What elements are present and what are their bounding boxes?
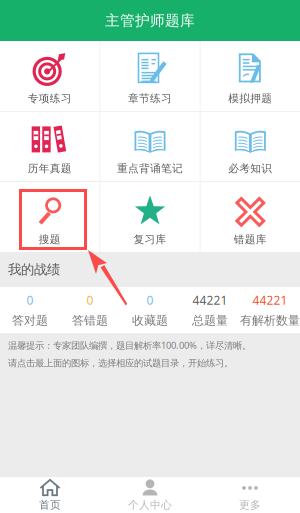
staticText: 个人中心 [128, 498, 172, 511]
staticText: 0 [146, 292, 153, 308]
button[interactable]: 个人中心 [100, 477, 200, 513]
button[interactable]: 必考知识 [201, 112, 300, 181]
staticText: 温馨提示：专家团队编撰，题目解析率100.00%，详尽清晰。 [8, 339, 251, 351]
staticText: 答对题 [12, 313, 48, 328]
staticText: 收藏题 [132, 313, 168, 328]
staticText: 0 [26, 292, 33, 308]
button[interactable]: 专项练习 [0, 41, 99, 111]
staticText: 重点背诵笔记 [117, 162, 183, 175]
button[interactable]: 模拟押题 [201, 41, 300, 111]
button[interactable]: 首页 [0, 477, 100, 513]
staticText: 有解析数量 [240, 313, 300, 328]
staticText: 主管护师题库 [105, 11, 195, 29]
staticText: 模拟押题 [228, 92, 272, 105]
staticText: 必考知识 [228, 162, 272, 175]
staticText: 错题库 [234, 233, 267, 246]
staticText: 44221 [252, 292, 287, 308]
button[interactable]: 更多 [200, 477, 300, 513]
button[interactable]: 历年真题 [0, 112, 99, 181]
staticText: 答错题 [72, 313, 108, 328]
staticText: 请点击最上面的图标，选择相应的试题目录，开始练习。 [8, 357, 233, 369]
staticText: 我的战绩 [8, 261, 60, 278]
staticText: 总题量 [192, 313, 228, 328]
button[interactable]: 错题库 [201, 182, 300, 252]
button[interactable]: 搜题 [0, 182, 99, 252]
staticText: 历年真题 [28, 162, 72, 175]
button[interactable]: 重点背诵笔记 [100, 112, 200, 181]
button[interactable]: 复习库 [100, 182, 200, 252]
staticText: 章节练习 [128, 92, 172, 105]
staticText: 首页 [39, 498, 61, 511]
staticText: 复习库 [133, 233, 166, 246]
button[interactable]: 章节练习 [100, 41, 200, 111]
staticText: 0 [86, 292, 93, 308]
staticText: 更多 [239, 498, 261, 511]
staticText: 44221 [192, 292, 227, 308]
staticText: 专项练习 [28, 92, 72, 105]
staticText: 搜题 [39, 233, 61, 246]
